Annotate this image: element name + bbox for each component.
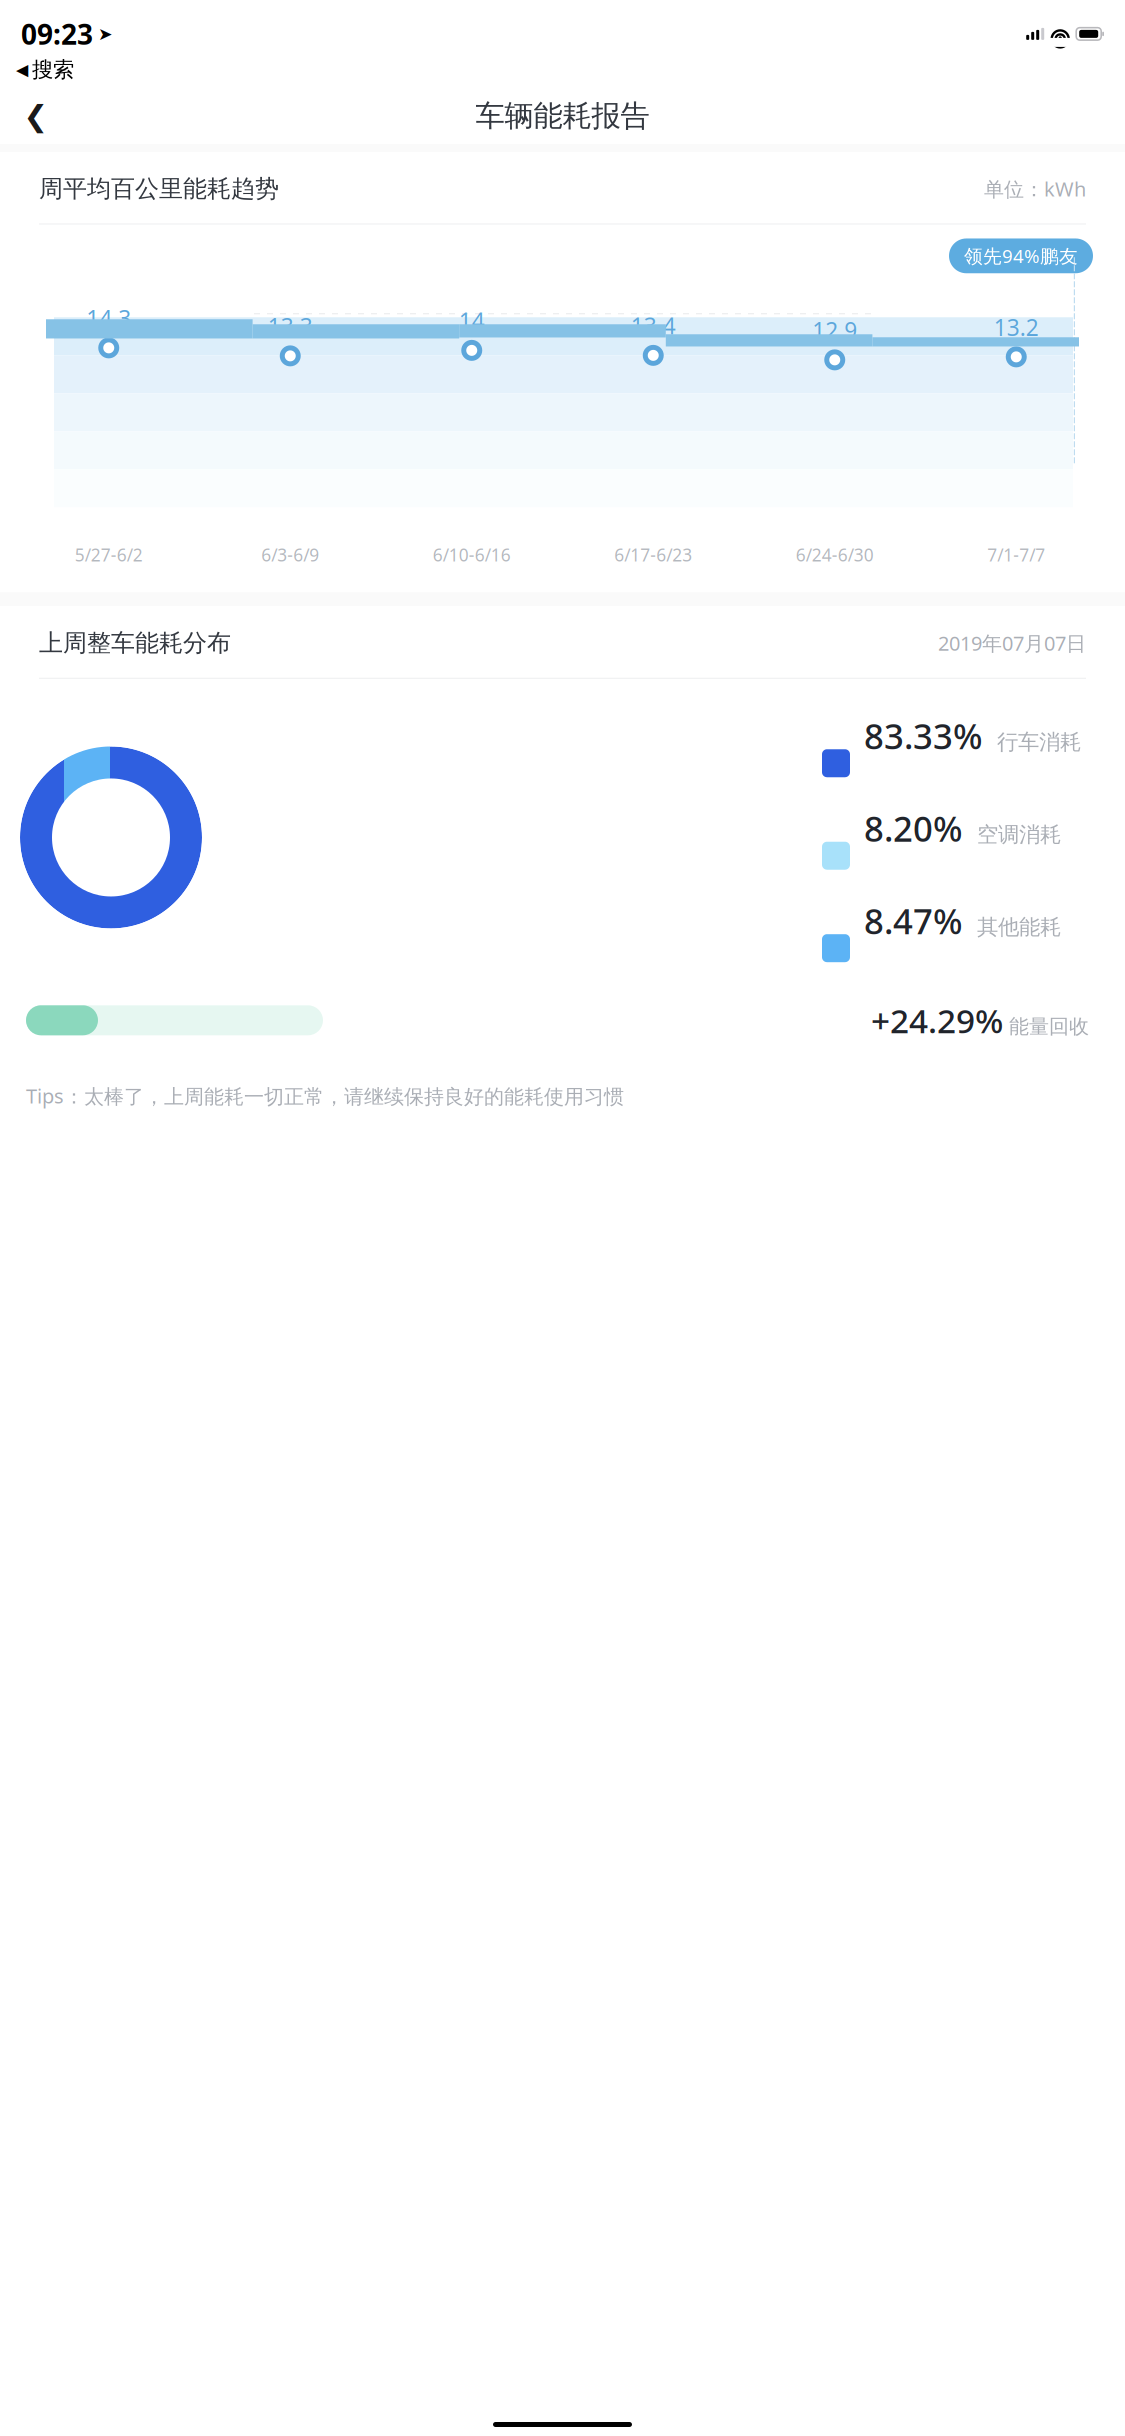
staticText: 搜索 — [32, 56, 74, 83]
staticText: 上周整车能耗分布 — [39, 628, 231, 658]
button[interactable]: 返回 — [12, 92, 60, 140]
staticText: 其他能耗 — [977, 914, 1061, 940]
staticText: 空调消耗 — [977, 821, 1061, 848]
staticText: +24.29% — [871, 998, 1003, 1042]
staticText: 83.33% — [864, 713, 983, 759]
staticText: 领先94%鹏友 — [964, 243, 1078, 268]
staticText: 14.3 — [86, 303, 131, 333]
staticText: 单位：kWh — [984, 175, 1086, 202]
staticText: 6/10-6/16 — [433, 543, 511, 566]
staticText: 13.3 — [268, 311, 313, 341]
staticText: 周平均百公里能耗趋势 — [39, 174, 279, 203]
staticText: 13.2 — [994, 312, 1039, 342]
staticText: 能量回收 — [1009, 1014, 1089, 1039]
staticText: 6/17-6/23 — [614, 543, 692, 566]
staticText: 5/27-6/2 — [75, 543, 143, 566]
staticText: 8.47% — [864, 898, 963, 944]
staticText: 8.20% — [864, 805, 963, 851]
staticText: 行车消耗 — [997, 729, 1081, 755]
staticText: ➤ — [98, 24, 113, 44]
staticText: 13.4 — [631, 311, 676, 341]
staticText: 12.9 — [812, 315, 857, 345]
staticText: ❮ — [23, 99, 48, 133]
staticText: ◀ — [16, 60, 28, 79]
staticText: 车辆能耗报告 — [475, 98, 649, 134]
staticText: 6/3-6/9 — [261, 543, 319, 566]
staticText: Tips：太棒了，上周能耗一切正常，请继续保持良好的能耗使用习惯 — [26, 1082, 624, 1109]
staticText: 6/24-6/30 — [796, 543, 874, 566]
staticText: 09:23 — [21, 15, 93, 52]
staticText: 14 — [459, 306, 485, 336]
staticText: 2019年07月07日 — [938, 630, 1086, 656]
staticText: 7/1-7/7 — [987, 543, 1045, 566]
